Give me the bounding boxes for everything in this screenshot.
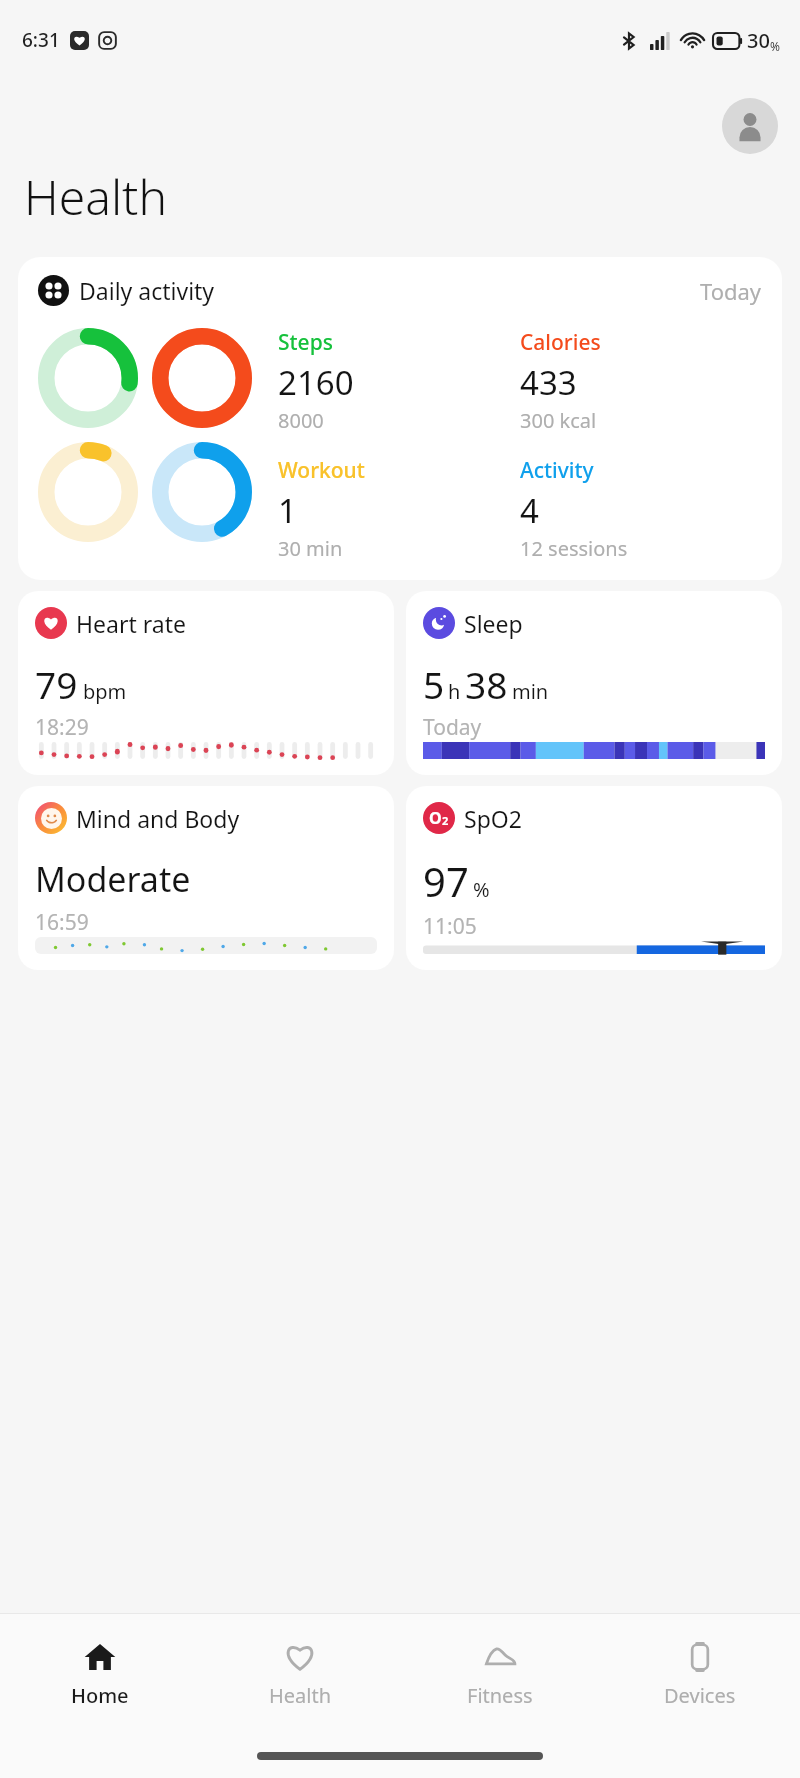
staticText: SpO2	[464, 803, 522, 834]
staticText: %	[770, 38, 780, 54]
staticText: 18:29	[35, 713, 89, 742]
button[interactable]: Health	[200, 1614, 400, 1734]
staticText: Fitness	[467, 1682, 533, 1709]
staticText: bpm	[83, 678, 127, 705]
staticText: 4	[520, 488, 539, 533]
staticText: Calories	[520, 328, 601, 357]
staticText: %	[473, 876, 490, 903]
button[interactable]: Mind and Body	[18, 786, 394, 970]
staticText: Moderate	[35, 856, 191, 902]
staticText: Home	[71, 1682, 129, 1709]
staticText: Activity	[520, 456, 594, 485]
staticText: 433	[520, 360, 577, 405]
staticText: 2160	[278, 360, 354, 405]
staticText: 8000	[278, 407, 324, 434]
staticText: Steps	[278, 328, 333, 357]
button[interactable]: Devices	[600, 1614, 800, 1734]
staticText: 30	[747, 27, 770, 54]
staticText: 5	[423, 659, 445, 709]
staticText: 300 kcal	[520, 407, 597, 434]
staticText: Today	[700, 276, 762, 306]
button[interactable]: Heart rate	[18, 591, 394, 775]
staticText: 38	[465, 659, 508, 709]
button[interactable]: Home	[0, 1614, 200, 1734]
staticText: 1	[278, 488, 297, 533]
staticText: 30 min	[278, 535, 343, 562]
staticText: Mind and Body	[76, 803, 240, 834]
button[interactable]: Fitness	[400, 1614, 600, 1734]
staticText: Health	[24, 164, 167, 229]
staticText: Workout	[278, 456, 365, 485]
staticText: 12 sessions	[520, 535, 628, 562]
staticText: Daily activity	[79, 275, 215, 306]
button[interactable]: O	[406, 786, 782, 970]
staticText: Devices	[664, 1682, 736, 1709]
staticText: O	[429, 807, 442, 829]
staticText: 97	[423, 854, 469, 908]
staticText: h	[448, 678, 461, 705]
staticText: 79	[35, 659, 78, 709]
button[interactable]: Sleep	[406, 591, 782, 775]
staticText: Sleep	[464, 608, 523, 639]
staticText: 16:59	[35, 908, 89, 937]
staticText: min	[512, 678, 549, 705]
button[interactable]: Daily activity	[18, 257, 782, 580]
staticText: 2	[442, 813, 449, 828]
staticText: Today	[423, 713, 482, 742]
staticText: 6:31	[22, 27, 60, 53]
staticText: Heart rate	[76, 608, 186, 639]
button[interactable]: Profile	[722, 98, 778, 154]
staticText: 11:05	[423, 912, 477, 941]
staticText: Health	[269, 1682, 332, 1709]
